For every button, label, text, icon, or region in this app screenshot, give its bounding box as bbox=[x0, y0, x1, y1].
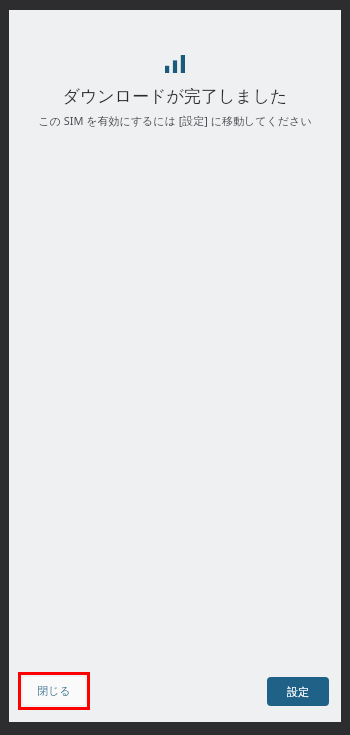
staticText: この SIM を有効にするには [設定] に移動してください bbox=[27, 113, 323, 128]
staticText: ダウンロードが完了しました bbox=[21, 86, 329, 107]
staticText: 設定 bbox=[287, 685, 309, 699]
button[interactable]: 設定 bbox=[267, 677, 329, 706]
other: Signal strength bbox=[165, 55, 185, 73]
staticText: 閉じる bbox=[37, 684, 71, 698]
button[interactable]: 閉じる bbox=[23, 677, 85, 705]
